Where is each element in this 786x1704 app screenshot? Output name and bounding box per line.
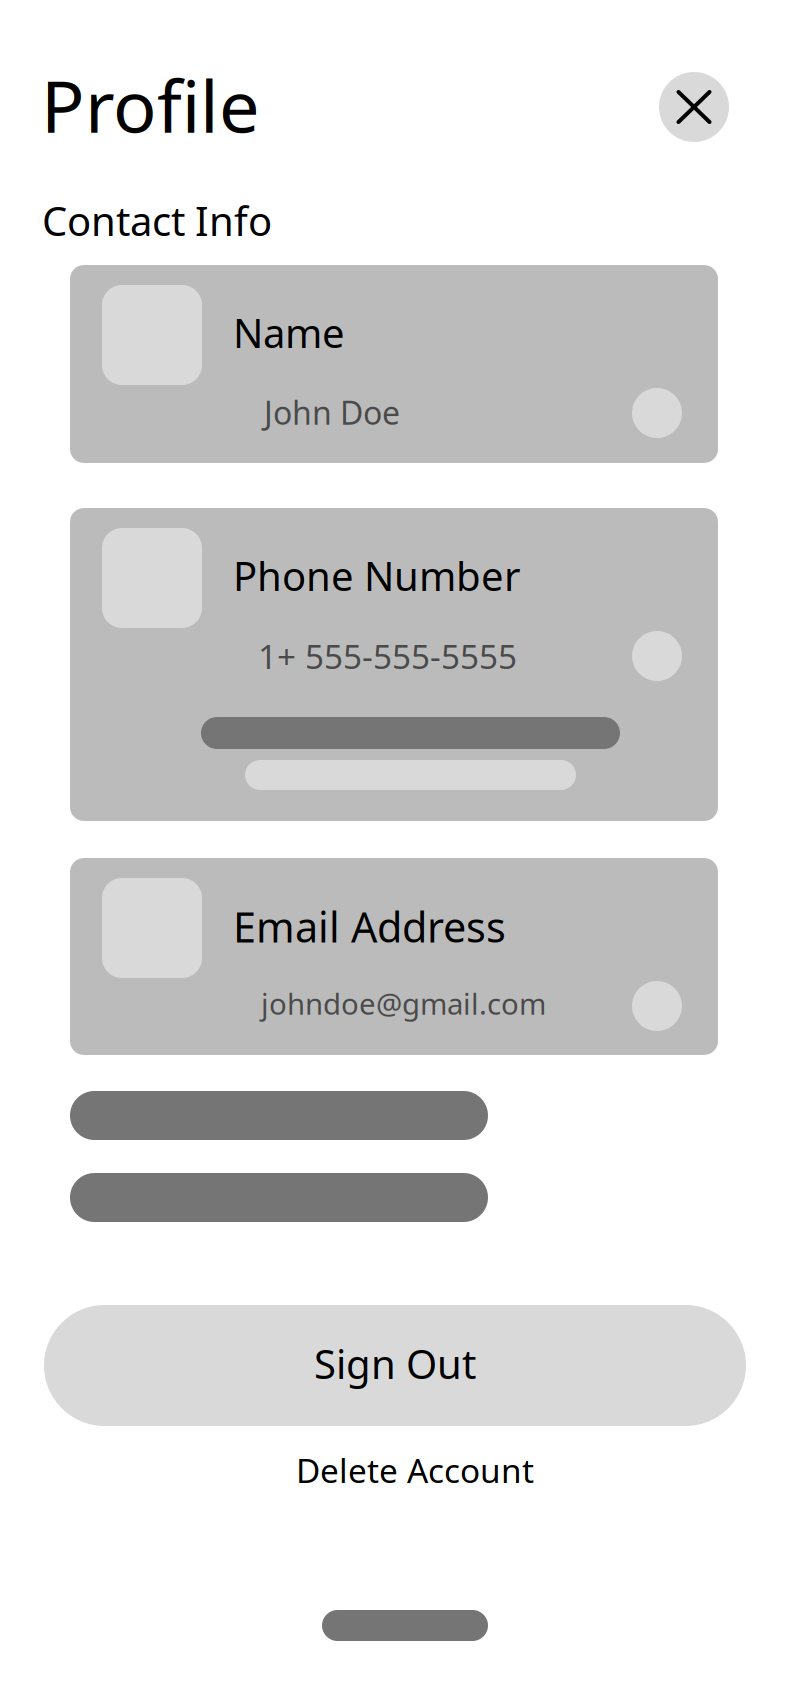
staticText: Delete Account (296, 1448, 534, 1492)
staticText: Sign Out (314, 1337, 476, 1390)
staticText: Name (233, 306, 345, 359)
staticText: Phone Number (233, 549, 521, 602)
button[interactable]: Delete Account (296, 1448, 534, 1492)
button[interactable]: Email Address (70, 858, 718, 1055)
staticText: 1+ 555-555-5555 (258, 634, 517, 678)
staticText: Email Address (233, 899, 506, 954)
button[interactable]: Phone Number (70, 508, 718, 821)
button[interactable]: Name (70, 265, 718, 463)
staticText: johndoe@gmail.com (261, 984, 546, 1023)
staticText: Profile (41, 57, 260, 153)
staticText: John Doe (264, 391, 400, 433)
button[interactable]: Close (659, 72, 729, 142)
button[interactable]: Sign Out (44, 1305, 746, 1426)
staticText: Contact Info (42, 194, 272, 247)
